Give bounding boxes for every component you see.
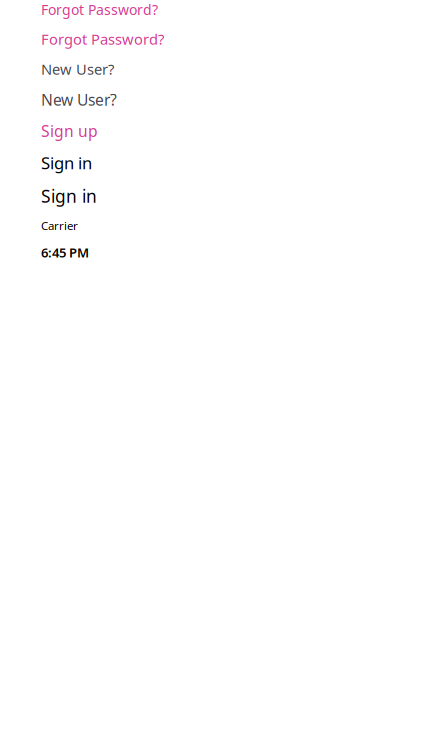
staticText: Sign in (41, 151, 92, 174)
staticText: New User? (41, 89, 117, 110)
staticText: Carrier (41, 218, 78, 233)
staticText: New User? (41, 59, 114, 79)
staticText: Forgot Password? (41, 0, 158, 19)
staticText: 6:45 PM (41, 243, 89, 261)
staticText: Forgot Password? (41, 29, 164, 49)
staticText: Sign in (41, 184, 97, 208)
staticText: Sign up (41, 120, 98, 141)
